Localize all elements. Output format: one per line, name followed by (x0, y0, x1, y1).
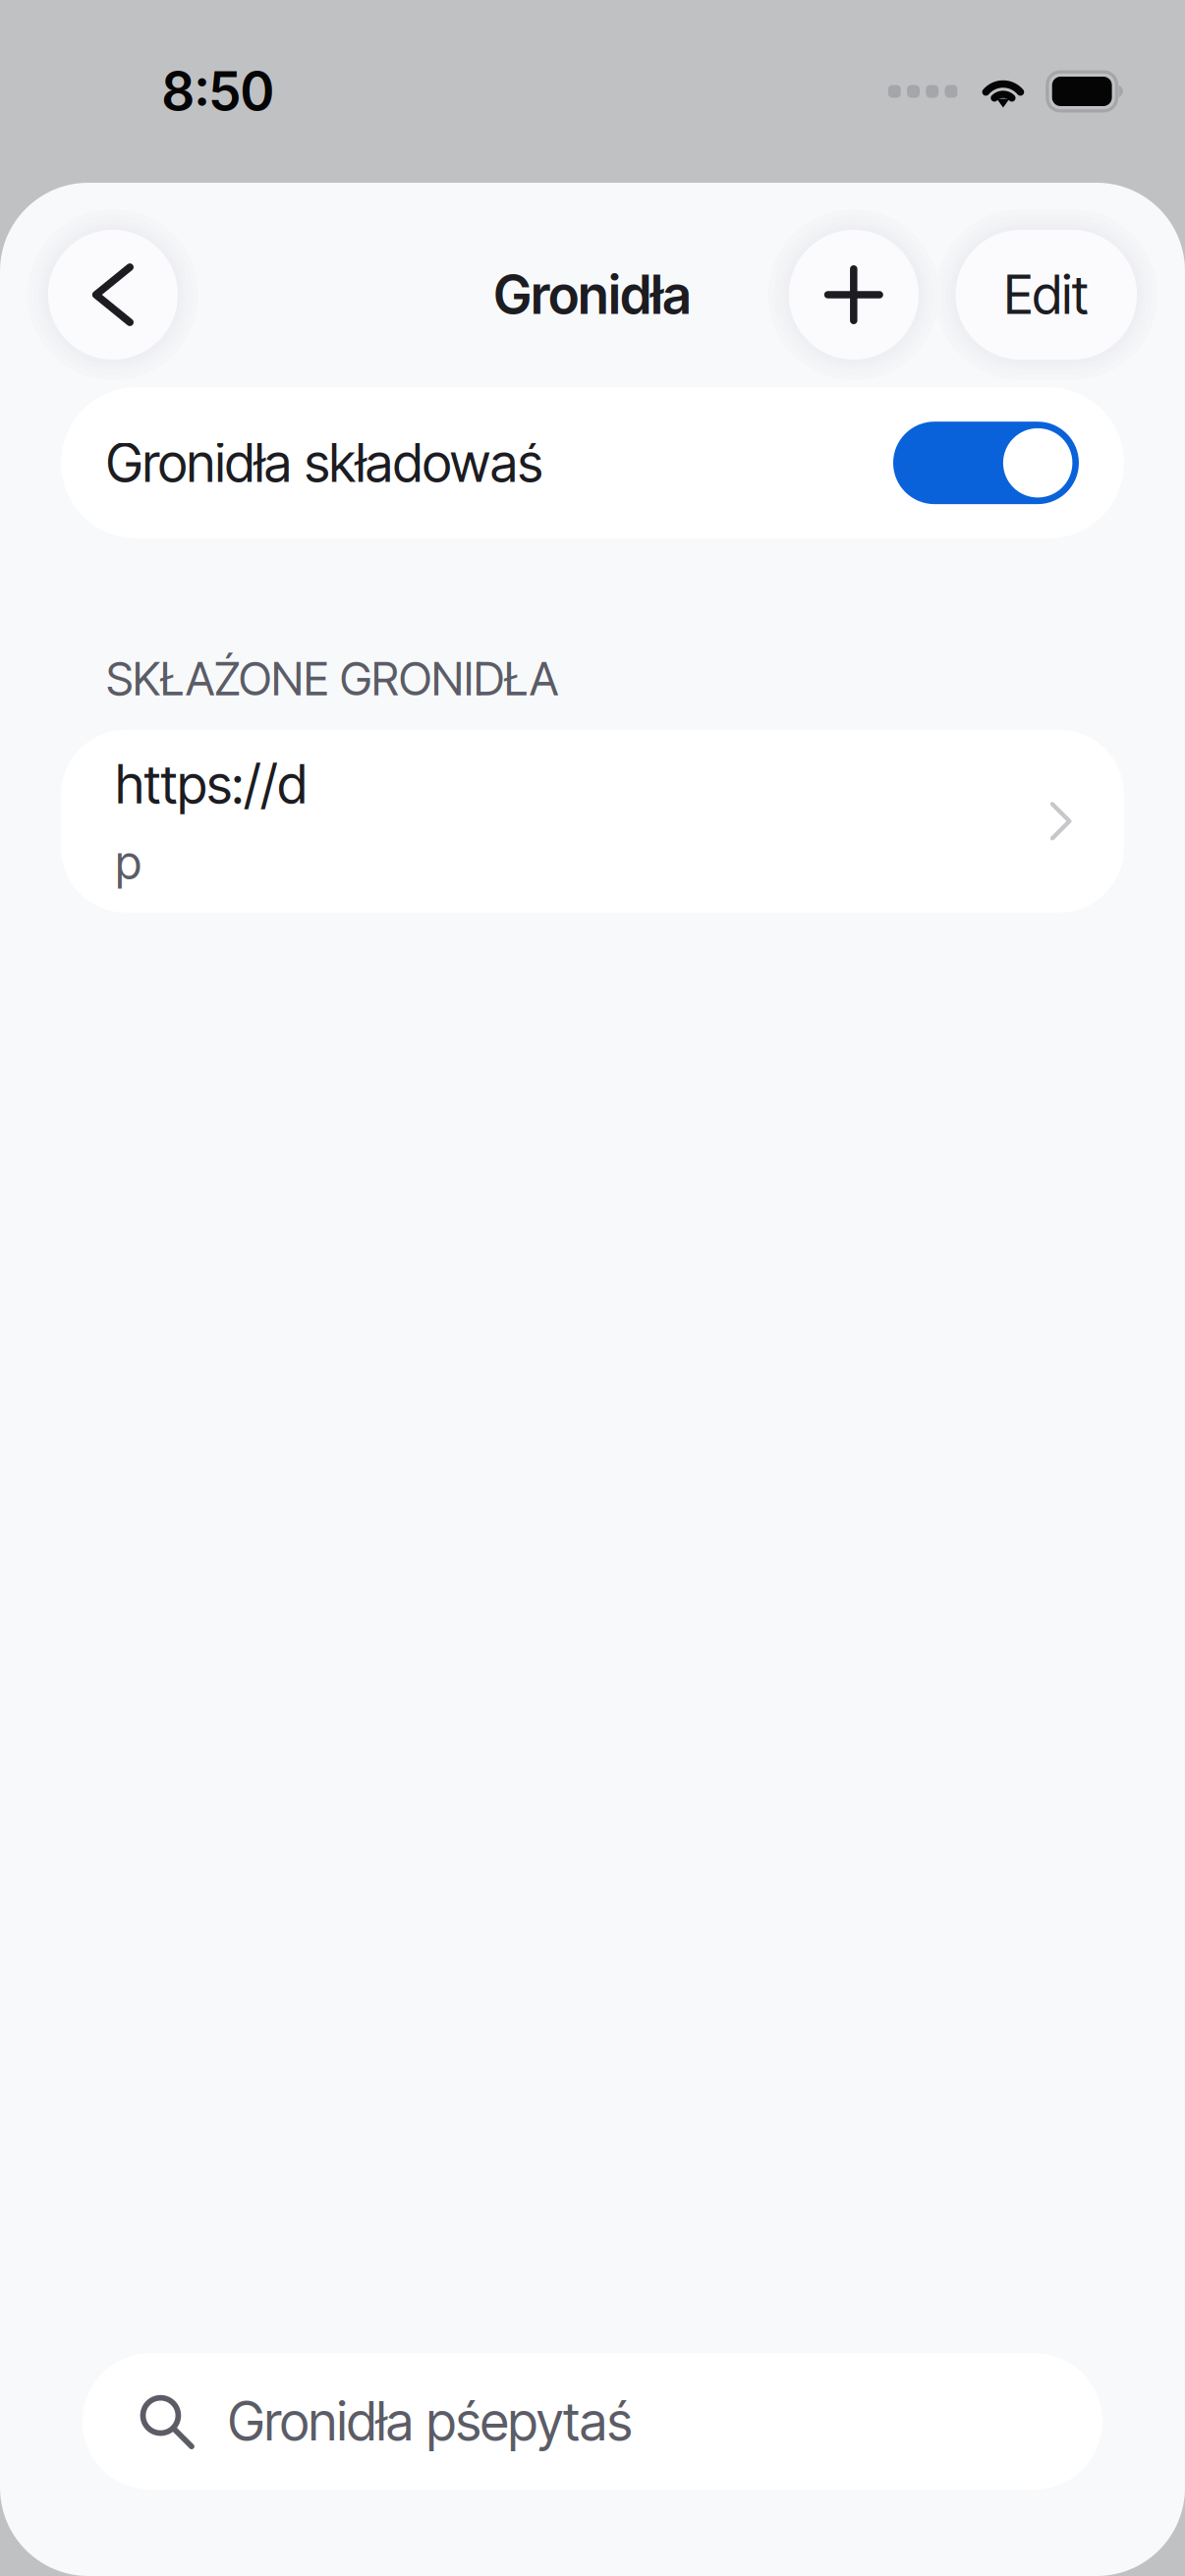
staticText: Edit (1004, 263, 1089, 326)
staticText: Gronidła pśepytaś (228, 2390, 632, 2453)
button[interactable]: Add password (789, 230, 919, 360)
staticText: Gronidła składowaś (106, 431, 542, 495)
button[interactable]: Gronidła pśepytaś (83, 2353, 1102, 2490)
staticText: https://d (116, 753, 307, 816)
button[interactable]: https://d (61, 730, 1124, 913)
staticText: p (116, 834, 141, 890)
staticText: Gronidła (494, 263, 691, 326)
staticText: SKŁAŹONE GRONIDŁA (106, 651, 558, 706)
button[interactable]: Edit (956, 230, 1137, 360)
button[interactable]: Back (48, 230, 178, 360)
staticText: 8:50 (162, 60, 274, 123)
button[interactable]: Gronidła składowaś (893, 422, 1079, 504)
